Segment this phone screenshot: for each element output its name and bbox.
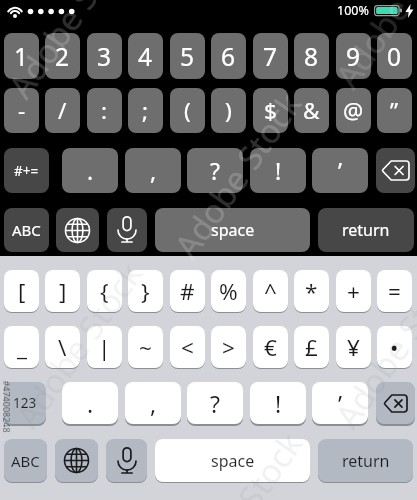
button[interactable]: ! xyxy=(250,382,306,424)
button[interactable]: \ xyxy=(45,326,80,368)
button[interactable]: 3 xyxy=(87,33,122,79)
button[interactable]: • xyxy=(377,326,412,368)
button[interactable]: 123 xyxy=(4,382,46,424)
button[interactable]: % xyxy=(211,270,246,312)
button[interactable]: 6 xyxy=(211,33,246,79)
button[interactable]: 1 xyxy=(4,33,39,79)
staticText: % xyxy=(219,276,238,307)
button[interactable]: . xyxy=(62,382,118,424)
staticText: Adobe Stock xyxy=(5,253,152,437)
button[interactable]: * xyxy=(294,270,329,312)
staticText: , xyxy=(150,388,157,419)
staticText: Adobe Stock xyxy=(325,253,417,437)
staticText: #+= xyxy=(14,162,39,180)
staticText: , xyxy=(150,155,157,186)
button[interactable]: ABC xyxy=(4,208,49,252)
staticText: ; xyxy=(142,95,149,126)
button[interactable]: , xyxy=(125,148,181,193)
button[interactable]: 9 xyxy=(336,33,371,79)
staticText: $ xyxy=(264,95,277,126)
button[interactable]: space xyxy=(155,208,310,252)
button[interactable]: ’ xyxy=(312,148,368,193)
button[interactable]: < xyxy=(170,326,205,368)
button[interactable]: > xyxy=(211,326,246,368)
staticText: 123 xyxy=(13,394,37,412)
staticText: 7 xyxy=(263,40,278,73)
staticText: ( xyxy=(184,95,191,126)
button[interactable]: return xyxy=(318,208,414,252)
button[interactable]: #+= xyxy=(4,148,49,193)
staticText: / xyxy=(58,95,67,126)
staticText: < xyxy=(181,332,194,363)
button[interactable]: . xyxy=(62,148,118,193)
staticText: ¥ xyxy=(347,332,360,363)
button[interactable] xyxy=(107,208,147,252)
staticText: 0 xyxy=(387,40,402,73)
button[interactable]: 4 xyxy=(128,33,163,79)
staticText: ABC xyxy=(12,220,41,240)
button[interactable] xyxy=(376,382,415,424)
button[interactable]: £ xyxy=(294,326,329,368)
button[interactable]: ABC xyxy=(4,439,47,482)
button[interactable]: ; xyxy=(128,88,163,133)
button[interactable]: 2 xyxy=(45,33,80,79)
button[interactable] xyxy=(56,208,99,252)
button[interactable]: | xyxy=(87,326,122,368)
button[interactable]: = xyxy=(377,270,412,312)
button[interactable]: { xyxy=(87,270,122,312)
button[interactable]: 0 xyxy=(377,33,412,79)
button[interactable]: - xyxy=(4,88,39,133)
button[interactable]: ! xyxy=(250,148,306,193)
staticText: Adobe Stock xyxy=(325,0,417,97)
button[interactable] xyxy=(106,439,147,482)
button[interactable]: @ xyxy=(336,88,371,133)
button[interactable]: ’ xyxy=(312,382,368,424)
staticText: ? xyxy=(210,155,220,186)
staticText: = xyxy=(388,276,401,307)
button[interactable]: , xyxy=(125,382,181,424)
button[interactable]: & xyxy=(294,88,329,133)
button[interactable]: $ xyxy=(253,88,288,133)
button[interactable]: ( xyxy=(170,88,205,133)
button[interactable]: return xyxy=(318,439,413,482)
staticText: € xyxy=(264,332,277,363)
staticText: ! xyxy=(275,388,282,419)
button[interactable]: ^ xyxy=(253,270,288,312)
staticText: } xyxy=(141,276,150,307)
button[interactable]: ? xyxy=(187,148,243,193)
staticText: space xyxy=(211,450,255,472)
staticText: @ xyxy=(343,95,364,126)
button[interactable] xyxy=(376,148,415,193)
button[interactable]: # xyxy=(170,270,205,312)
staticText: { xyxy=(100,276,109,307)
button[interactable]: [ xyxy=(4,270,39,312)
button[interactable]: € xyxy=(253,326,288,368)
button[interactable]: 7 xyxy=(253,33,288,79)
button[interactable]: ] xyxy=(45,270,80,312)
button[interactable]: ) xyxy=(211,88,246,133)
staticText: Adobe Stock xyxy=(165,423,312,500)
button[interactable]: ? xyxy=(187,382,243,424)
button[interactable]: } xyxy=(128,270,163,312)
button[interactable]: ” xyxy=(377,88,412,133)
button[interactable] xyxy=(55,439,98,482)
button[interactable]: _ xyxy=(4,326,39,368)
staticText: 1 xyxy=(14,40,29,73)
staticText: 9 xyxy=(346,40,361,73)
button[interactable]: 5 xyxy=(170,33,205,79)
staticText: £ xyxy=(305,332,318,363)
button[interactable]: ~ xyxy=(128,326,163,368)
staticText: 3 xyxy=(97,40,112,73)
button[interactable]: 8 xyxy=(294,33,329,79)
staticText: > xyxy=(222,332,235,363)
staticText: ~ xyxy=(139,332,152,363)
button[interactable]: ¥ xyxy=(336,326,371,368)
staticText: Adobe Stock xyxy=(0,0,145,107)
button[interactable]: / xyxy=(45,88,80,133)
button[interactable]: space xyxy=(155,439,310,482)
button[interactable]: : xyxy=(87,88,122,133)
staticText: 2 xyxy=(55,40,70,73)
staticText: ] xyxy=(59,276,67,307)
button[interactable]: + xyxy=(336,270,371,312)
staticText: ” xyxy=(390,95,399,126)
